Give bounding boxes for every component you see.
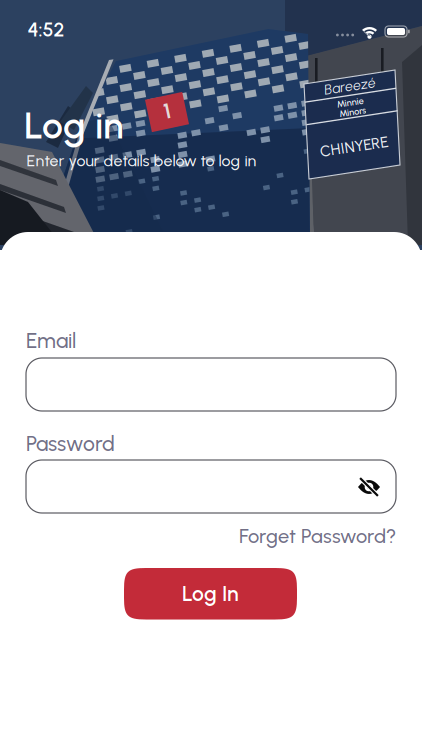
staticText: 4:52	[27, 18, 64, 41]
staticText: Log in	[24, 103, 124, 148]
staticText: CHINYERE	[319, 137, 388, 156]
staticText: Password	[26, 431, 115, 456]
staticText: Minors	[339, 106, 366, 118]
button[interactable]: Email	[26, 358, 396, 411]
staticText: Log In	[182, 581, 239, 606]
staticText: Forget Password?	[239, 524, 396, 548]
staticText: Bareezé	[324, 78, 376, 94]
button[interactable]: Log In	[124, 568, 297, 619]
button[interactable]: Show password	[357, 475, 381, 499]
staticText: 1	[163, 98, 170, 124]
button[interactable]: Forget Password?	[26, 524, 396, 548]
button[interactable]: Password	[26, 460, 396, 513]
staticText: Minnie	[336, 97, 363, 108]
staticText: Email	[26, 328, 76, 353]
staticText: Enter your details below to log in	[26, 151, 256, 170]
